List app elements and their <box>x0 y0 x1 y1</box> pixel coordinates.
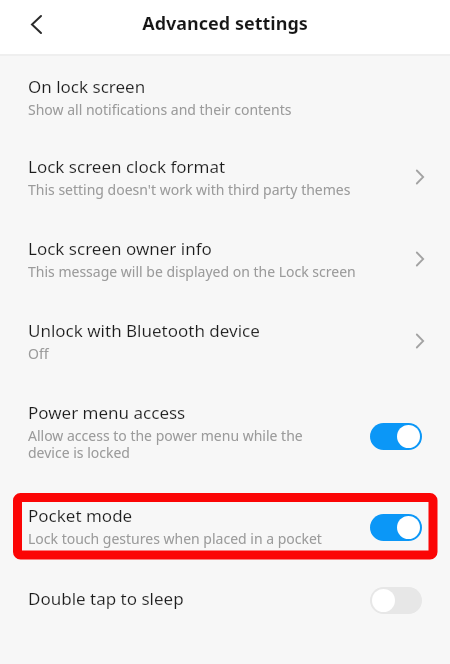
staticText: Lock screen clock format <box>28 155 226 178</box>
button[interactable]: On lock screen <box>0 75 450 119</box>
staticText: Lock screen owner info <box>28 237 212 260</box>
staticText: Show all notifications and their content… <box>28 100 292 119</box>
button[interactable]: Power menu access <box>0 401 450 462</box>
staticText: Off <box>28 344 49 363</box>
staticText: This message will be displayed on the Lo… <box>28 262 356 281</box>
staticText: Unlock with Bluetooth device <box>28 319 260 342</box>
staticText: Advanced settings <box>142 11 308 36</box>
button[interactable] <box>370 514 422 541</box>
button[interactable]: Lock screen clock format <box>0 155 450 199</box>
button[interactable] <box>370 587 422 614</box>
staticText: Double tap to sleep <box>28 587 184 610</box>
staticText: Allow access to the power menu while the… <box>28 426 303 462</box>
staticText: Power menu access <box>28 401 186 424</box>
staticText: This setting doesn't work with third par… <box>28 180 351 199</box>
staticText: On lock screen <box>28 75 146 98</box>
button[interactable]: Unlock with Bluetooth device <box>0 319 450 363</box>
staticText: Lock touch gestures when placed in a poc… <box>28 529 322 548</box>
button[interactable]: Pocket mode <box>0 504 450 548</box>
button[interactable]: Lock screen owner info <box>0 237 450 281</box>
button[interactable] <box>370 423 422 450</box>
button[interactable] <box>20 8 52 40</box>
staticText: Pocket mode <box>28 504 133 527</box>
button[interactable]: Double tap to sleep <box>0 585 450 612</box>
